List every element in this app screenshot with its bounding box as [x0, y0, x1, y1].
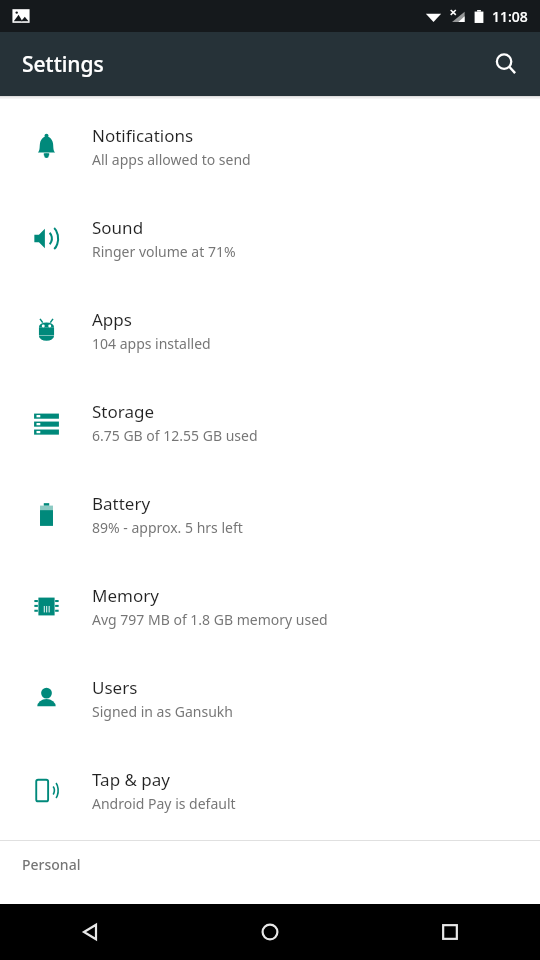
staticText: Battery — [92, 492, 151, 515]
button[interactable]: Back — [0, 904, 180, 960]
staticText: Personal — [22, 855, 81, 874]
staticText: Settings — [22, 50, 104, 79]
button[interactable]: Sound — [0, 192, 540, 284]
staticText: 104 apps installed — [92, 334, 211, 353]
staticText: Tap & pay — [92, 768, 171, 791]
staticText: Android Pay is default — [92, 794, 236, 813]
staticText: All apps allowed to send — [92, 150, 251, 169]
button[interactable]: Notifications — [0, 100, 540, 192]
staticText: 89% - approx. 5 hrs left — [92, 518, 243, 537]
button[interactable]: Memory — [0, 560, 540, 652]
button[interactable]: Tap & pay — [0, 744, 540, 836]
button[interactable]: Recents — [360, 904, 540, 960]
staticText: Signed in as Gansukh — [92, 702, 233, 721]
staticText: Ringer volume at 71% — [92, 242, 236, 261]
staticText: 11:08 — [492, 7, 528, 26]
button[interactable]: Users — [0, 652, 540, 744]
staticText: Apps — [92, 308, 132, 331]
button[interactable]: Home — [180, 904, 360, 960]
staticText: Users — [92, 676, 138, 699]
staticText: Memory — [92, 584, 159, 607]
staticText: Notifications — [92, 124, 194, 147]
button[interactable]: Storage — [0, 376, 540, 468]
staticText: Sound — [92, 216, 144, 239]
button[interactable]: Search — [482, 40, 530, 88]
staticText: Storage — [92, 400, 155, 423]
staticText: 6.75 GB of 12.55 GB used — [92, 426, 258, 445]
button[interactable]: Apps — [0, 284, 540, 376]
button[interactable]: Battery — [0, 468, 540, 560]
staticText: Avg 797 MB of 1.8 GB memory used — [92, 610, 328, 629]
